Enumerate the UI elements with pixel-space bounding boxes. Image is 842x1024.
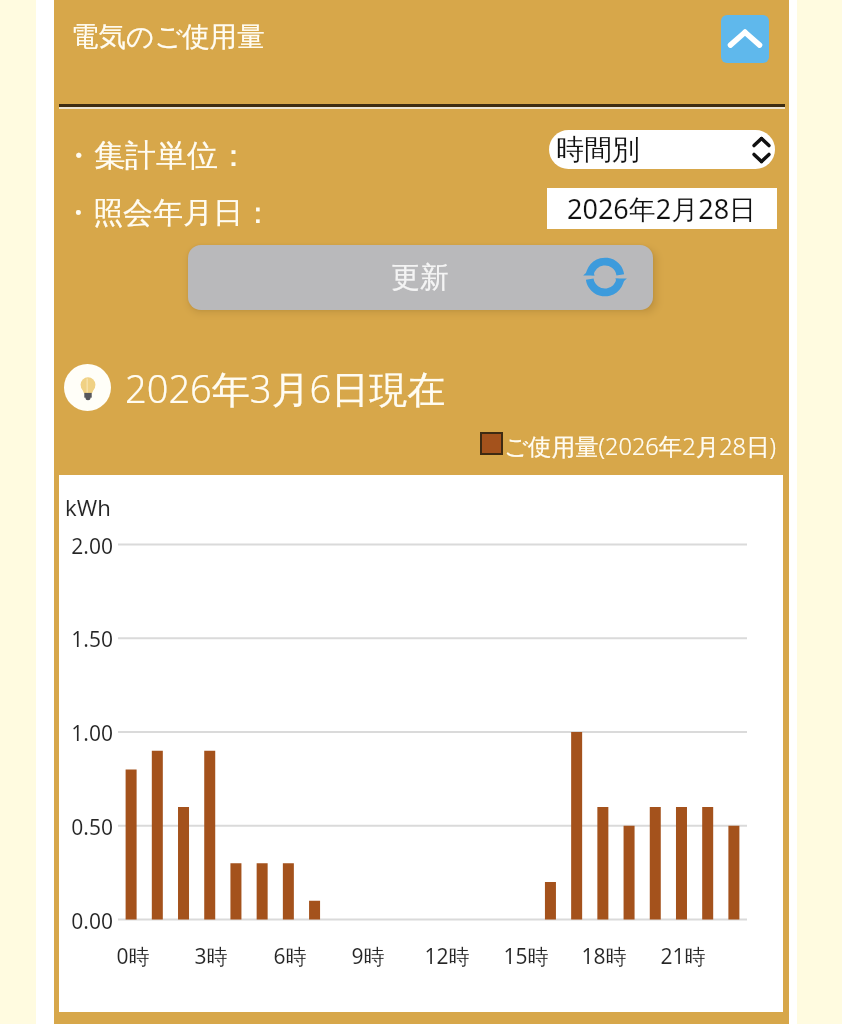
staticText: 2.00 (53, 532, 113, 561)
staticText: 9時 (328, 942, 408, 971)
staticText: 15時 (486, 942, 566, 971)
staticText: 1.50 (53, 625, 113, 654)
staticText: 18時 (564, 942, 644, 971)
button[interactable]: Collapse section (721, 15, 769, 63)
button[interactable]: 集計単位 時間別 (549, 130, 775, 169)
staticText: 更新 (391, 259, 449, 296)
staticText: 0.50 (53, 813, 113, 842)
staticText: ご使用量(2026年2月28日) (504, 430, 776, 462)
staticText: 1.00 (53, 719, 113, 748)
button[interactable]: 照会年月日 2026年2月28日 (547, 188, 777, 229)
staticText: ・集計単位： (63, 136, 249, 175)
staticText: 0.00 (53, 907, 113, 936)
staticText: 2026年2月28日 (567, 190, 757, 227)
staticText: ・照会年月日： (63, 194, 273, 232)
staticText: 2026年3月6日現在 (125, 362, 446, 414)
button[interactable]: 更新 (188, 245, 653, 310)
staticText: 0時 (93, 942, 173, 971)
staticText: 3時 (171, 942, 251, 971)
staticText: 6時 (250, 942, 330, 971)
staticText: 時間別 (556, 132, 640, 167)
staticText: 電気のご使用量 (71, 20, 265, 55)
staticText: 12時 (407, 942, 487, 971)
staticText: 21時 (643, 942, 723, 971)
staticText: kWh (65, 492, 111, 522)
